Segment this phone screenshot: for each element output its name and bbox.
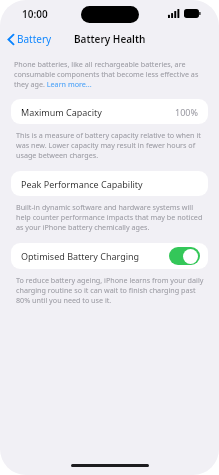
button[interactable]: Optimised Battery Charging xyxy=(11,243,208,269)
staticText: 10:00 xyxy=(22,7,48,21)
staticText: Optimised Battery Charging xyxy=(21,250,140,262)
staticText: Phone batteries, like all rechargeable b… xyxy=(14,59,207,89)
staticText: 100% xyxy=(175,106,198,118)
staticText: Battery xyxy=(17,32,52,46)
staticText: To reduce battery ageing, iPhone learns … xyxy=(16,275,205,305)
button[interactable]: Optimised Battery Charging toggle xyxy=(169,247,200,265)
staticText: Peak Performance Capability xyxy=(21,178,143,190)
staticText: Battery Health xyxy=(74,32,146,46)
button[interactable]: Maximum Capacity xyxy=(11,99,208,124)
staticText: Built-in dynamic software and hardware s… xyxy=(16,202,205,232)
button[interactable]: Peak Performance Capability xyxy=(11,171,208,196)
staticText: Maximum Capacity xyxy=(21,106,102,118)
other: Back xyxy=(8,34,14,45)
staticText: This is a measure of battery capacity re… xyxy=(16,130,205,160)
button[interactable]: Back xyxy=(0,29,60,49)
